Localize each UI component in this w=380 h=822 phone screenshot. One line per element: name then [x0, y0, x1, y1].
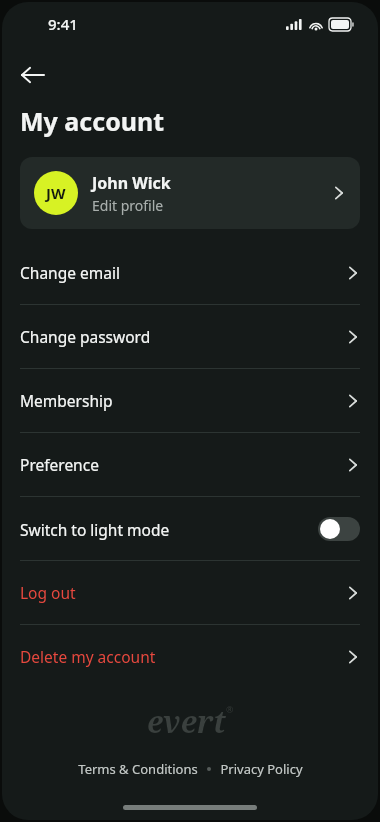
button[interactable]: JW: [20, 157, 360, 229]
button[interactable]: Delete my account: [2, 625, 378, 688]
button[interactable]: Change email: [2, 241, 378, 304]
staticText: JW: [46, 183, 66, 203]
button[interactable]: Privacy Policy: [220, 760, 303, 778]
staticText: evert: [147, 701, 226, 742]
staticText: ®: [226, 703, 234, 715]
staticText: John Wick: [92, 172, 171, 194]
staticText: Delete my account: [20, 646, 346, 667]
staticText: Change password: [20, 326, 346, 347]
button[interactable]: Change password: [2, 305, 378, 368]
staticText: Membership: [20, 390, 346, 411]
staticText: 9:41: [48, 14, 78, 34]
staticText: Switch to light mode: [20, 519, 318, 540]
staticText: Edit profile: [92, 196, 164, 215]
button[interactable]: Terms & Conditions: [78, 760, 198, 778]
button[interactable]: Back: [14, 56, 52, 94]
button[interactable]: Preference: [2, 433, 378, 496]
button[interactable]: Membership: [2, 369, 378, 432]
staticText: My account: [20, 104, 165, 138]
staticText: Log out: [20, 582, 346, 603]
button[interactable]: Switch to light mode: [2, 497, 378, 560]
button[interactable]: Log out: [2, 561, 378, 624]
staticText: Preference: [20, 454, 346, 475]
staticText: Change email: [20, 262, 346, 283]
